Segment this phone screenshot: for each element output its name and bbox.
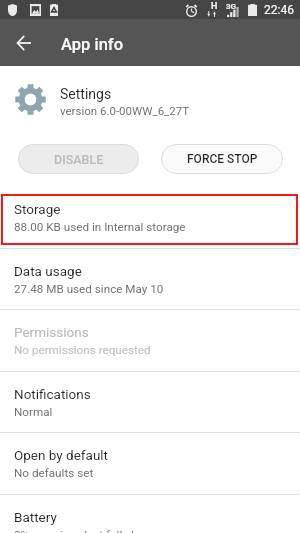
button[interactable]: Permissions	[0, 310, 300, 372]
staticText: No defaults set	[14, 466, 94, 480]
button[interactable]: Battery	[0, 495, 300, 533]
staticText: Battery	[14, 509, 57, 525]
staticText: 27.48 MB used since May 10	[14, 282, 164, 296]
staticText: 88.00 KB used in Internal storage	[14, 220, 186, 234]
button[interactable]: Back	[0, 19, 48, 66]
staticText: FORCE STOP	[187, 152, 258, 166]
staticText: Settings	[60, 86, 112, 102]
button[interactable]: Data usage	[0, 249, 300, 311]
staticText: Notifications	[14, 386, 91, 402]
staticText: Storage	[14, 201, 61, 217]
button[interactable]: DISABLE	[18, 144, 139, 174]
staticText: 22:46	[264, 3, 294, 17]
staticText: version 6.0-00WW_6_27T	[60, 104, 190, 117]
staticText: Normal	[14, 405, 53, 419]
staticText: Permissions	[14, 324, 89, 340]
staticText: Data usage	[14, 263, 82, 279]
staticText: 0% use since last full charge	[14, 528, 161, 533]
staticText: DISABLE	[54, 152, 104, 167]
staticText: 3G	[226, 2, 237, 11]
staticText: App info	[61, 35, 124, 54]
staticText: No permissions requested	[14, 343, 151, 357]
button[interactable]: FORCE STOP	[161, 144, 283, 174]
button[interactable]: Open by default	[0, 433, 300, 495]
button[interactable]: Notifications	[0, 372, 300, 434]
staticText: H	[211, 1, 218, 12]
staticText: Open by default	[14, 447, 109, 463]
button[interactable]: Storage	[0, 187, 300, 249]
